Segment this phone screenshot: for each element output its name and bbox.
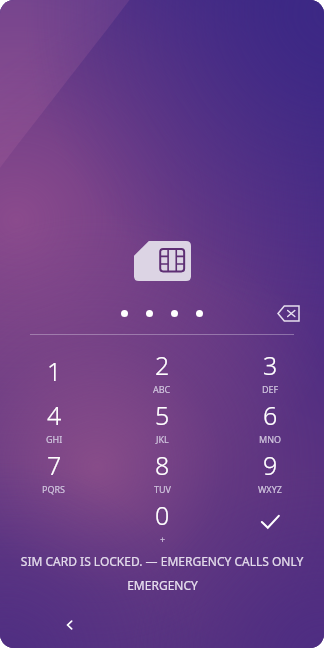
staticText: 9	[263, 448, 278, 482]
staticText: 5	[155, 398, 170, 432]
staticText: 6	[263, 398, 278, 432]
button[interactable]: 5	[108, 397, 216, 447]
staticText: +	[160, 533, 166, 545]
staticText: TUV	[154, 483, 171, 495]
staticText: 2	[155, 348, 170, 382]
button[interactable]: 7	[0, 447, 108, 497]
staticText: 1	[47, 354, 62, 388]
staticText: SIM CARD IS LOCKED. — EMERGENCY CALLS ON…	[0, 553, 324, 569]
staticText: 8	[155, 448, 170, 482]
button[interactable]: 6	[216, 397, 324, 447]
staticText: GHI	[46, 433, 63, 445]
staticText: ABC	[153, 383, 171, 395]
staticText: 0	[155, 498, 170, 532]
staticText: PQRS	[42, 483, 66, 495]
staticText: JKL	[156, 433, 169, 445]
staticText: 3	[263, 348, 278, 382]
staticText: WXYZ	[258, 483, 282, 495]
button[interactable]: Back	[52, 607, 88, 643]
button[interactable]: 3	[216, 347, 324, 397]
staticText: DEF	[262, 383, 279, 395]
staticText: MNO	[259, 433, 282, 445]
button[interactable]: 1	[0, 347, 108, 397]
button[interactable]: Confirm	[216, 497, 324, 547]
staticText: EMERGENCY	[127, 577, 198, 593]
button[interactable]: 8	[108, 447, 216, 497]
staticText: 7	[47, 448, 62, 482]
button[interactable]: Delete	[270, 301, 306, 325]
button[interactable]: 4	[0, 397, 108, 447]
staticText: 4	[47, 398, 62, 432]
button[interactable]: 2	[108, 347, 216, 397]
button[interactable]: EMERGENCY	[111, 575, 214, 595]
button[interactable]: 0	[108, 497, 216, 547]
button[interactable]: 9	[216, 447, 324, 497]
